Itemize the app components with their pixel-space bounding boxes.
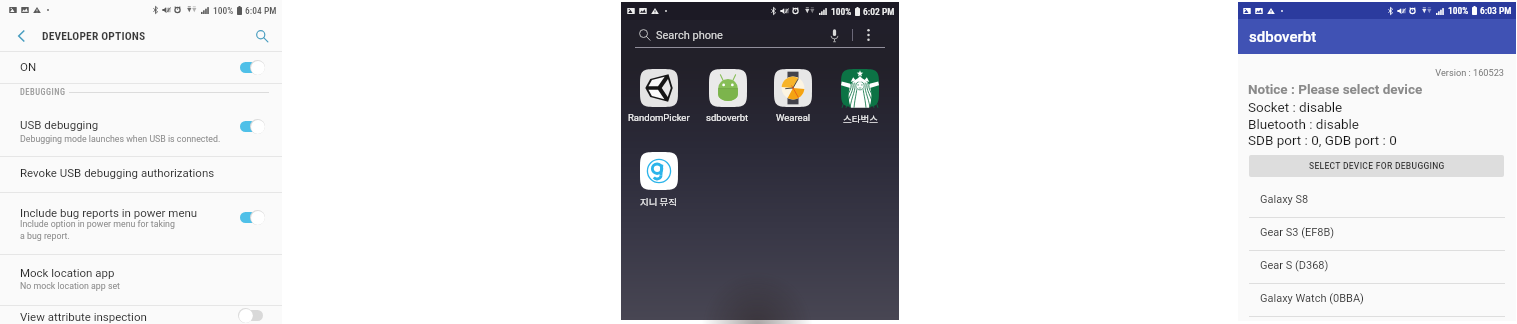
staticText: ON: [20, 60, 37, 73]
staticText: DEBUGGING: [20, 87, 66, 97]
staticText: 6:04 PM: [245, 5, 277, 16]
staticText: sdboverbt: [706, 112, 749, 123]
staticText: Galaxy S8: [1260, 193, 1309, 206]
button[interactable]: [0, 52, 282, 83]
button[interactable]: sdboverbt: [693, 67, 761, 123]
button[interactable]: Voice search: [829, 27, 840, 43]
staticText: 지니 뮤직: [640, 195, 678, 206]
button[interactable]: RandomPicker: [625, 67, 693, 123]
staticText: Gear S3 (EF8B): [1260, 226, 1335, 239]
button[interactable]: [238, 209, 265, 225]
button[interactable]: Search: [242, 20, 282, 51]
button[interactable]: Navigate up: [0, 20, 42, 51]
button[interactable]: [0, 193, 282, 254]
staticText: RandomPicker: [628, 112, 690, 123]
button[interactable]: [0, 157, 282, 192]
staticText: Include option in power menu for taking: [20, 219, 175, 229]
staticText: Galaxy Watch (0BBA): [1260, 292, 1364, 305]
staticText: 6:03 PM: [1480, 5, 1512, 16]
staticText: Bluetooth : disable: [1248, 116, 1360, 132]
staticText: USB debugging: [20, 118, 99, 131]
button[interactable]: [0, 108, 282, 156]
button[interactable]: Galaxy Watch (0BBA): [1238, 284, 1516, 316]
button[interactable]: Gear S (D368): [1238, 251, 1516, 283]
button[interactable]: Search phone: [639, 24, 872, 46]
button[interactable]: SELECT DEVICE FOR DEBUGGING: [1249, 155, 1504, 177]
staticText: Weareal: [776, 112, 811, 123]
staticText: 스타벅스: [843, 112, 878, 123]
button[interactable]: [0, 306, 282, 324]
staticText: Version : 160523: [1238, 67, 1504, 78]
staticText: Search phone: [656, 29, 723, 42]
staticText: View attribute inspection: [20, 310, 147, 323]
staticText: Gear S (D368): [1260, 259, 1329, 272]
button[interactable]: [0, 255, 282, 305]
staticText: Debugging mode launches when USB is conn…: [20, 134, 221, 144]
staticText: 100%: [1448, 5, 1469, 16]
staticText: Notice : Please select device: [1248, 81, 1423, 97]
button[interactable]: Gear S3 (EF8B): [1238, 218, 1516, 250]
staticText: No mock location app set: [20, 281, 121, 291]
button[interactable]: Weareal: [759, 67, 827, 123]
staticText: SDB port : 0, GDB port : 0: [1248, 132, 1397, 148]
staticText: a bug report.: [20, 231, 70, 241]
button[interactable]: More options: [865, 27, 872, 43]
button[interactable]: 지니 뮤직: [625, 150, 693, 206]
staticText: Include bug reports in power menu: [20, 206, 198, 219]
button[interactable]: Galaxy S8: [1238, 185, 1516, 217]
staticText: SELECT DEVICE FOR DEBUGGING: [1309, 161, 1445, 171]
button[interactable]: [238, 307, 265, 323]
staticText: 6:02 PM: [863, 6, 895, 17]
staticText: Socket : disable: [1248, 99, 1343, 115]
staticText: Revoke USB debugging authorizations: [20, 166, 215, 179]
button[interactable]: [238, 59, 265, 75]
staticText: Mock location app: [20, 266, 115, 279]
staticText: sdboverbt: [1249, 28, 1317, 46]
button[interactable]: [238, 118, 265, 134]
staticText: DEVELOPER OPTIONS: [42, 29, 146, 42]
staticText: 100%: [213, 5, 234, 16]
button[interactable]: 스타벅스: [826, 67, 894, 123]
staticText: 100%: [831, 6, 852, 17]
